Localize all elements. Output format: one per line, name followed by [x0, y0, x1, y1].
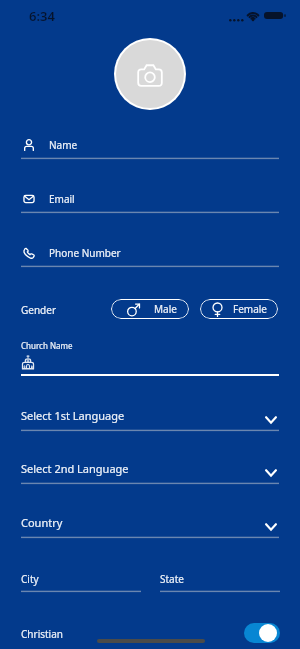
button[interactable]: Church Name	[21, 340, 279, 376]
button[interactable]: Country	[21, 515, 279, 538]
button[interactable]: Name	[21, 134, 279, 159]
staticText: Name	[49, 138, 78, 152]
button[interactable]: Female	[200, 299, 278, 319]
staticText: City	[21, 572, 39, 586]
button[interactable]: Christian toggle	[244, 623, 280, 643]
button[interactable]: City	[21, 572, 141, 592]
staticText: Gender	[21, 303, 57, 317]
button[interactable]: Select 1st Language	[21, 408, 279, 431]
staticText: Male	[154, 302, 177, 316]
staticText: Country	[21, 515, 63, 530]
button[interactable]: Email	[21, 188, 279, 213]
button[interactable]: Add profile photo	[114, 38, 186, 110]
staticText: State	[160, 572, 184, 586]
staticText: 6:34	[29, 7, 55, 25]
staticText: Female	[233, 302, 268, 316]
staticText: Church Name	[21, 340, 73, 351]
button[interactable]: State	[160, 572, 280, 592]
button[interactable]: Male	[111, 299, 189, 319]
button[interactable]: Phone Number	[21, 242, 279, 267]
staticText: Email	[49, 192, 75, 206]
staticText: Christian	[21, 627, 63, 641]
staticText: Select 1st Language	[21, 408, 125, 423]
staticText: Select 2nd Language	[21, 461, 129, 476]
button[interactable]: Select 2nd Language	[21, 461, 279, 484]
staticText: Phone Number	[49, 246, 121, 260]
